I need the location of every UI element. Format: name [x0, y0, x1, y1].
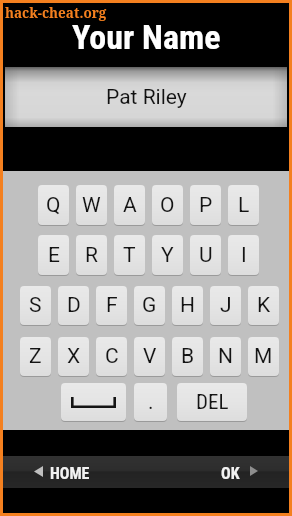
- button[interactable]: H: [172, 286, 203, 325]
- staticText: D: [67, 293, 81, 318]
- staticText: T: [123, 243, 136, 268]
- staticText: C: [105, 344, 119, 369]
- staticText: I: [241, 243, 247, 268]
- staticText: G: [142, 293, 157, 318]
- button[interactable]: K: [248, 286, 279, 325]
- staticText: Pat Riley: [106, 85, 187, 110]
- button[interactable]: U: [190, 235, 221, 275]
- staticText: V: [143, 344, 157, 369]
- button[interactable]: Space: [61, 383, 126, 421]
- staticText: OK: [221, 464, 240, 483]
- staticText: R: [85, 243, 98, 268]
- button[interactable]: N: [210, 337, 241, 376]
- button[interactable]: Delete: [177, 383, 247, 421]
- button[interactable]: W: [76, 185, 107, 225]
- button[interactable]: B: [172, 337, 203, 376]
- button[interactable]: L: [228, 185, 259, 225]
- staticText: B: [181, 344, 195, 369]
- staticText: K: [257, 293, 271, 318]
- staticText: H: [180, 293, 195, 318]
- button[interactable]: Pat Riley: [5, 67, 287, 127]
- staticText: S: [29, 293, 42, 318]
- staticText: O: [160, 193, 175, 218]
- button[interactable]: O: [152, 185, 183, 225]
- staticText: U: [199, 243, 213, 268]
- staticText: P: [199, 193, 213, 218]
- staticText: Your Name: [72, 17, 221, 57]
- button[interactable]: T: [114, 235, 145, 275]
- button[interactable]: R: [76, 235, 107, 275]
- staticText: F: [106, 293, 118, 318]
- button[interactable]: X: [58, 337, 89, 376]
- button[interactable]: Z: [20, 337, 51, 376]
- staticText: Y: [161, 243, 174, 268]
- button[interactable]: S: [20, 286, 51, 325]
- staticText: L: [238, 193, 250, 218]
- button[interactable]: Y: [152, 235, 183, 275]
- button[interactable]: F: [96, 286, 127, 325]
- staticText: HOME: [50, 464, 90, 483]
- staticText: Q: [46, 193, 61, 218]
- button[interactable]: Q: [38, 185, 69, 225]
- staticText: .: [148, 390, 154, 415]
- staticText: hack-cheat.org: [5, 4, 107, 22]
- button[interactable]: P: [190, 185, 221, 225]
- staticText: Z: [29, 344, 42, 369]
- button[interactable]: M: [248, 337, 279, 376]
- button[interactable]: OK: [213, 456, 273, 488]
- staticText: W: [82, 193, 101, 218]
- button[interactable]: HOME: [25, 456, 105, 488]
- staticText: A: [123, 193, 137, 218]
- staticText: N: [218, 344, 233, 369]
- button[interactable]: V: [134, 337, 165, 376]
- staticText: X: [67, 344, 81, 369]
- button[interactable]: Period: [134, 383, 167, 421]
- button[interactable]: I: [228, 235, 259, 275]
- staticText: E: [48, 243, 60, 268]
- button[interactable]: J: [210, 286, 241, 325]
- button[interactable]: D: [58, 286, 89, 325]
- staticText: J: [220, 293, 232, 318]
- button[interactable]: C: [96, 337, 127, 376]
- button[interactable]: G: [134, 286, 165, 325]
- button[interactable]: A: [114, 185, 145, 225]
- staticText: DEL: [196, 390, 229, 415]
- staticText: M: [254, 344, 273, 369]
- button[interactable]: E: [38, 235, 69, 275]
